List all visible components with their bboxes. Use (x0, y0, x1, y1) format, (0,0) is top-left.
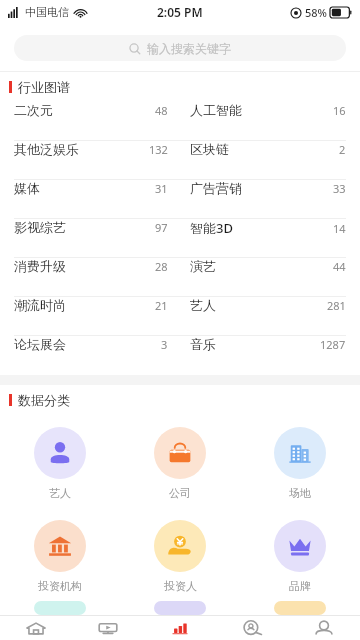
staticText: 2 (339, 142, 346, 157)
staticText: 智能3D (190, 219, 233, 237)
button[interactable]: 二次元 (0, 102, 180, 118)
staticText: 33 (333, 181, 346, 196)
staticText: 演艺 (190, 258, 216, 274)
button[interactable]: 消费升级 (0, 258, 180, 274)
staticText: 28 (155, 259, 168, 274)
button[interactable]: 论坛展会 (0, 336, 180, 352)
staticText: 132 (149, 142, 168, 157)
button[interactable]: 其他泛娱乐 (0, 141, 180, 157)
staticText: 人工智能 (190, 102, 242, 118)
button[interactable]: 招聘 (216, 616, 288, 640)
staticText: 输入搜索关键字 (147, 41, 231, 56)
staticText: 公司 (169, 486, 191, 500)
button[interactable]: 场地 (240, 415, 360, 508)
staticText: 44 (333, 259, 346, 274)
button[interactable]: 演艺 (180, 258, 360, 274)
staticText: 数据分类 (18, 392, 70, 408)
staticText: 14 (333, 221, 346, 236)
staticText: 投资人 (164, 579, 197, 593)
button[interactable]: 投资人 (120, 508, 240, 601)
staticText: 3 (161, 337, 168, 352)
staticText: 艺人 (190, 297, 216, 313)
button[interactable]: 媒体 (0, 180, 180, 196)
staticText: 21 (155, 298, 168, 313)
button[interactable]: 搜索 (14, 35, 346, 61)
button[interactable]: 区块链 (180, 141, 360, 157)
button[interactable]: 艺人 (180, 297, 360, 313)
staticText: 其他泛娱乐 (14, 141, 79, 157)
staticText: 区块链 (190, 141, 229, 157)
staticText: 广告营销 (190, 180, 242, 196)
staticText: 艺人 (49, 486, 71, 500)
button[interactable]: 智能3D (180, 219, 360, 237)
button[interactable]: 投资机构 (0, 508, 120, 601)
button[interactable]: 艺人 (0, 415, 120, 508)
staticText: 16 (333, 103, 346, 118)
staticText: 音乐 (190, 336, 216, 352)
staticText: 潮流时尚 (14, 297, 66, 313)
button[interactable]: 数据 (144, 616, 216, 640)
staticText: 品牌 (289, 579, 311, 593)
staticText: 影视综艺 (14, 219, 66, 235)
staticText: 97 (155, 220, 168, 235)
button[interactable]: 品牌 (240, 508, 360, 601)
staticText: 媒体 (14, 180, 40, 196)
button[interactable]: 日报 (0, 616, 72, 640)
staticText: 场地 (289, 486, 311, 500)
button[interactable]: 音乐 (180, 336, 360, 352)
staticText: 消费升级 (14, 258, 66, 274)
button[interactable]: 人工智能 (180, 102, 360, 118)
staticText: 投资机构 (38, 579, 82, 593)
staticText: 中国电信 (25, 5, 69, 19)
staticText: 48 (155, 103, 168, 118)
staticText: 58% (305, 5, 327, 20)
button[interactable]: 我的 (288, 616, 360, 640)
staticText: 行业图谱 (18, 79, 70, 95)
staticText: 31 (155, 181, 168, 196)
staticText: 论坛展会 (14, 336, 66, 352)
staticText: 1287 (320, 337, 346, 352)
button[interactable]: 影视综艺 (0, 219, 180, 235)
button[interactable]: 广告营销 (180, 180, 360, 196)
staticText: 二次元 (14, 102, 53, 118)
button[interactable]: 学院 (72, 616, 144, 640)
staticText: 281 (327, 298, 346, 313)
button[interactable]: 公司 (120, 415, 240, 508)
button[interactable]: 潮流时尚 (0, 297, 180, 313)
staticText: 2:05 PM (157, 4, 203, 20)
